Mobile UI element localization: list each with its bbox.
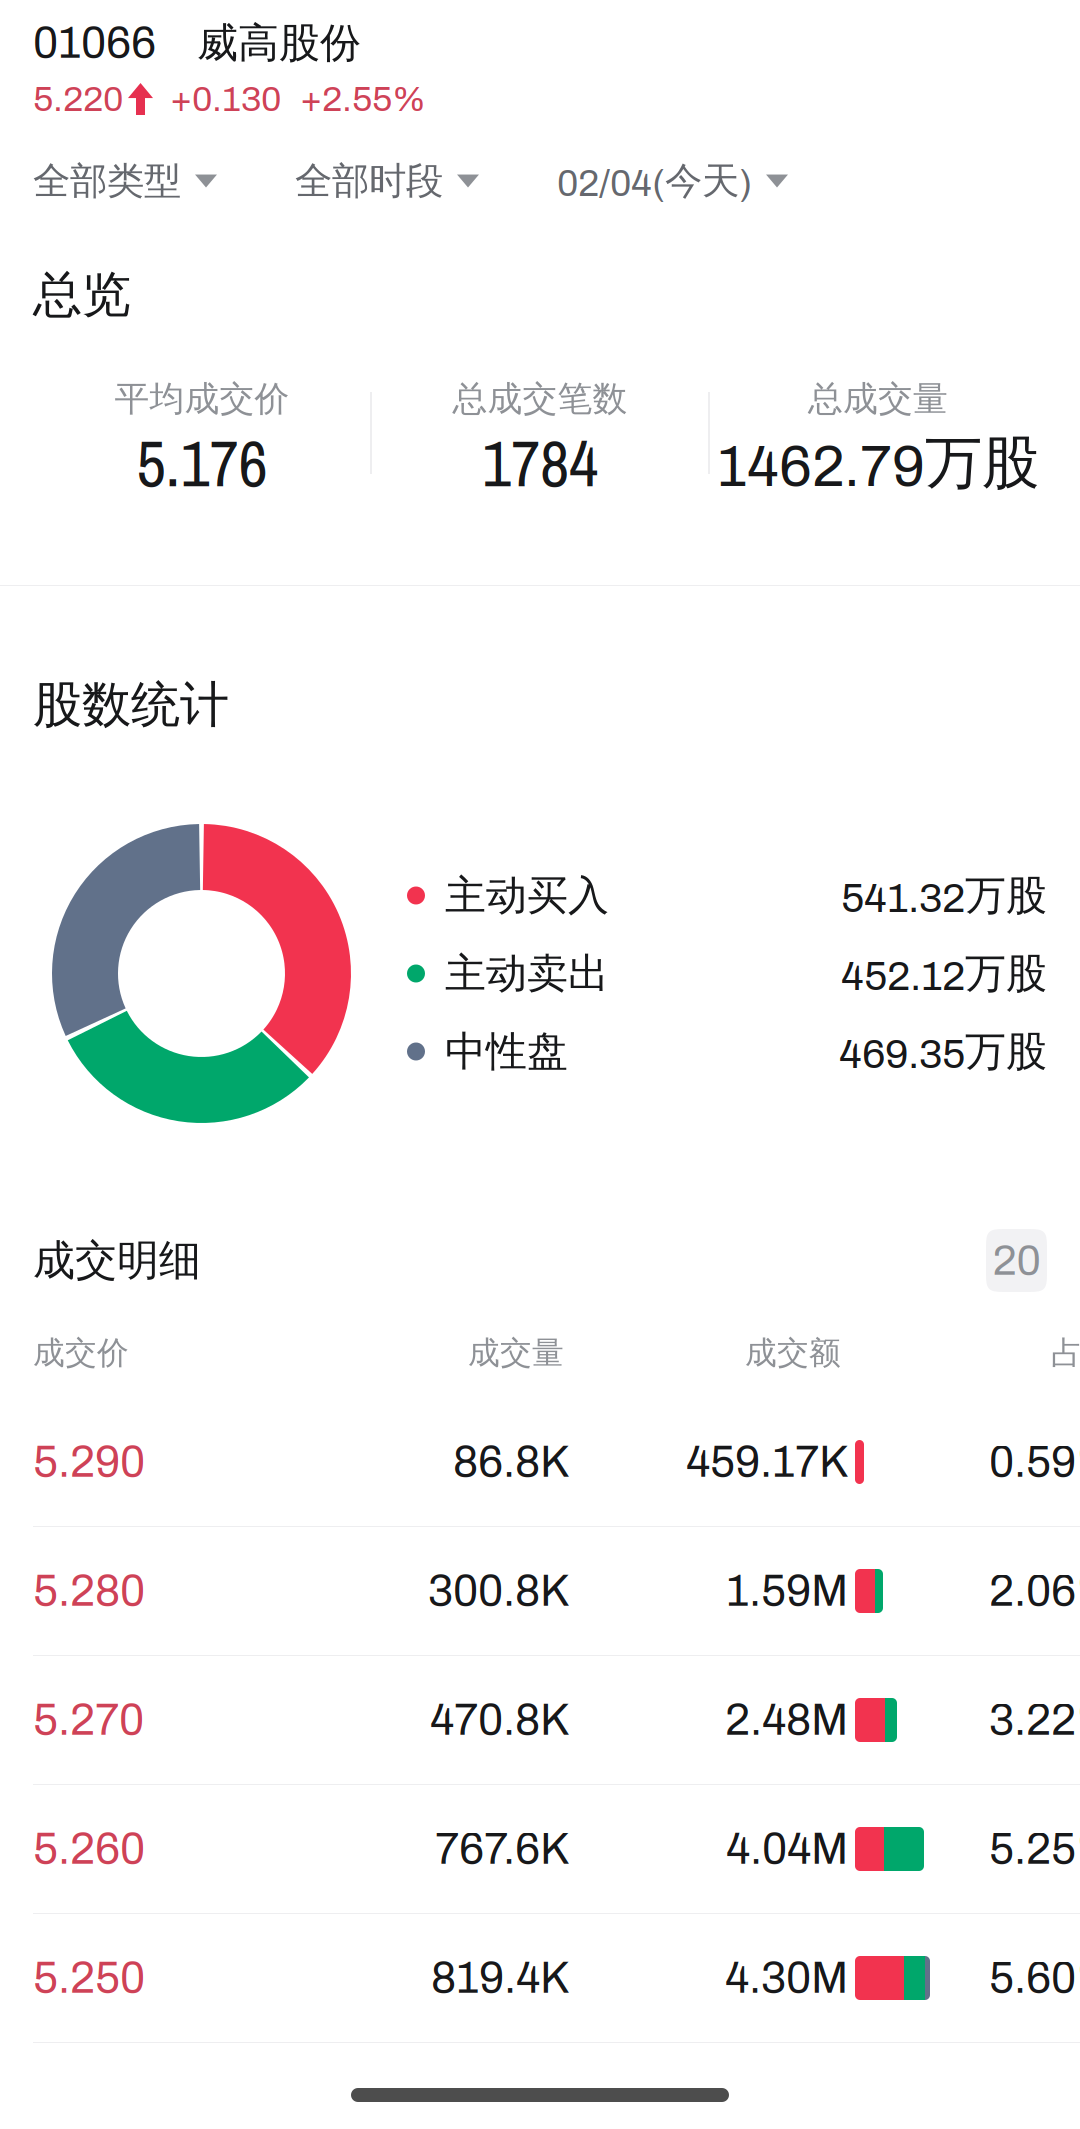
staticText: 300.8K [428,1567,569,1615]
staticText: 全部类型 [33,157,181,205]
staticText: 全部时段 [295,157,443,205]
staticText: 总成交量 [808,377,948,421]
staticText: 成交量 [468,1333,564,1373]
staticText: 20 [992,1237,1040,1284]
staticText: 成交额 [745,1333,841,1373]
staticText: 5.270 [33,1696,144,1744]
staticText: 0.59% [989,1438,1080,1486]
staticText: 股数统计 [33,674,229,736]
staticText: +0.130 [170,80,281,118]
staticText: +2.55% [300,80,426,118]
staticText: 469.35万股 [839,1026,1047,1077]
staticText: 主动买入 [445,870,609,921]
staticText: 1.59M [726,1567,848,1615]
button[interactable]: 5.250 [0,1914,1080,2043]
staticText: 中性盘 [445,1026,568,1077]
staticText: 平均成交价 [114,377,289,421]
staticText: 452.12万股 [841,948,1047,999]
staticText: 767.6K [435,1825,569,1873]
button[interactable]: 5.270 [0,1656,1080,1785]
staticText: 5.250 [33,1954,145,2002]
staticText: 占比 [1051,1333,1080,1373]
staticText: 1462.79万股 [717,427,1039,499]
staticText: 5.290 [33,1438,145,1486]
staticText: 1784 [482,420,598,506]
button[interactable]: 5.260 [0,1785,1080,1914]
staticText: 2.48M [725,1696,848,1744]
staticText: 5.220 [33,80,123,118]
button[interactable]: 全部类型 [33,158,217,204]
staticText: 2.06% [989,1567,1080,1615]
staticText: 5.280 [33,1567,145,1615]
staticText: 86.8K [453,1438,569,1486]
button[interactable]: 全部时段 [295,158,479,204]
staticText: 主动卖出 [445,948,609,999]
staticText: 5.60% [989,1954,1080,2002]
staticText: 总成交笔数 [452,377,627,421]
staticText: 总览 [33,264,131,326]
button[interactable]: 20 [986,1229,1047,1292]
staticText: 威高股份 [197,17,361,69]
staticText: 成交明细 [33,1234,201,1287]
staticText: 4.30M [725,1954,848,2002]
button[interactable]: 5.280 [0,1527,1080,1656]
button[interactable]: 02/04(今天) [557,158,788,204]
staticText: 成交价 [33,1333,129,1373]
staticText: 819.4K [431,1954,569,2002]
staticText: 4.04M [726,1825,848,1873]
staticText: 3.22% [989,1696,1080,1744]
staticText: 459.17K [686,1438,848,1486]
staticText: 5.176 [136,420,267,506]
staticText: 01066 [33,19,156,67]
staticText: 5.260 [33,1825,145,1873]
staticText: 02/04(今天) [557,157,752,205]
staticText: 470.8K [430,1696,569,1744]
button[interactable]: 5.290 [0,1398,1080,1527]
staticText: 541.32万股 [841,870,1047,921]
staticText: 5.25% [989,1825,1080,1873]
